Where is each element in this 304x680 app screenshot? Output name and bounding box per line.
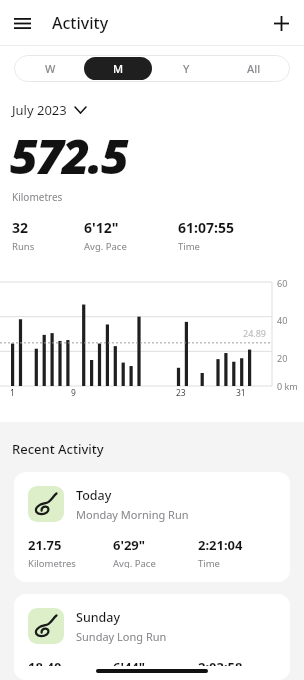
staticText: 18.40 [28, 658, 62, 666]
staticText: All [247, 61, 261, 76]
staticText: Activity [52, 12, 109, 34]
button[interactable]: Add activity [263, 5, 299, 41]
staticText: 6'12" [84, 218, 119, 237]
button[interactable]: Y [152, 57, 220, 80]
staticText: Kilometres [12, 190, 63, 204]
staticText: Y [183, 61, 190, 76]
staticText: 21.75 [28, 536, 62, 554]
staticText: 32 [12, 218, 29, 237]
staticText: Runs [12, 240, 35, 252]
staticText: 24.89 [243, 327, 267, 339]
staticText: 31 [236, 387, 246, 399]
staticText: Sunday [76, 609, 121, 626]
staticText: Time [178, 240, 200, 252]
staticText: W [45, 61, 56, 76]
staticText: Recent Activity [12, 440, 104, 458]
staticText: 1 [10, 387, 15, 399]
button[interactable]: Today [14, 472, 290, 582]
staticText: 6'29" [113, 536, 145, 554]
button[interactable]: M [84, 57, 152, 80]
staticText: 2:03:58 [198, 658, 243, 666]
button[interactable]: All [220, 57, 288, 80]
staticText: 23 [176, 387, 186, 399]
staticText: July 2023 [12, 101, 67, 119]
staticText: 2:21:04 [198, 536, 243, 554]
button[interactable]: Sunday [14, 594, 290, 680]
staticText: 40 [277, 314, 288, 326]
staticText: 6'44" [113, 658, 145, 666]
staticText: Time [198, 557, 220, 568]
button[interactable]: July 2023 [12, 101, 86, 119]
staticText: 9 [71, 387, 76, 399]
staticText: 20 [277, 352, 288, 364]
button[interactable]: Menu [4, 5, 40, 41]
staticText: 0 km [277, 380, 298, 392]
staticText: M [113, 61, 124, 76]
staticText: 60 [277, 277, 288, 289]
staticText: 61:07:55 [178, 218, 234, 237]
staticText: Kilometres [28, 557, 76, 568]
button[interactable]: W [16, 57, 84, 80]
staticText: Monday Morning Run [76, 507, 189, 522]
staticText: 572.5 [10, 123, 128, 188]
staticText: Avg. Pace [113, 557, 156, 568]
staticText: Avg. Pace [84, 240, 127, 252]
staticText: Today [76, 487, 112, 504]
staticText: Sunday Long Run [76, 629, 167, 644]
